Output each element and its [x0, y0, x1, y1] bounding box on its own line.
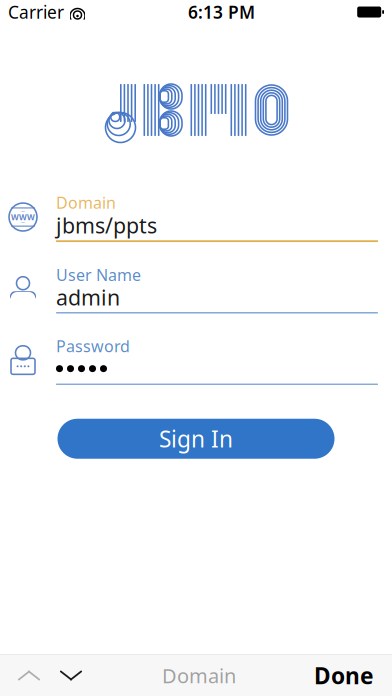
button[interactable]: Next field: [50, 655, 92, 695]
staticText: Password: [56, 335, 130, 357]
staticText: Carrier: [8, 0, 64, 23]
staticText: admin: [56, 283, 120, 311]
button[interactable]: Previous field: [8, 655, 50, 695]
staticText: Domain: [56, 192, 116, 213]
button[interactable]: Done: [306, 655, 382, 695]
staticText: Domain: [162, 662, 236, 689]
staticText: WWW: [11, 212, 35, 222]
staticText: User Name: [56, 264, 141, 285]
staticText: jbms/ppts: [56, 211, 157, 239]
staticText: 6:13 PM: [188, 0, 255, 23]
staticText: Done: [314, 660, 374, 690]
staticText: Sign In: [159, 424, 233, 454]
button[interactable]: Sign In: [57, 419, 334, 459]
